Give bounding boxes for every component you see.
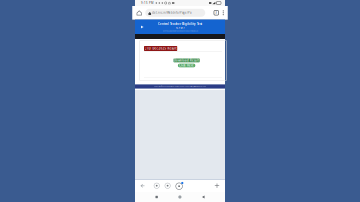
staticText: Download Result xyxy=(174,59,199,62)
button[interactable]: Back xyxy=(140,183,145,188)
button[interactable]: Forward xyxy=(154,183,159,188)
staticText: Click Here xyxy=(179,64,194,67)
button[interactable]: More options xyxy=(221,9,226,17)
staticText: 3 xyxy=(215,11,217,14)
button[interactable]: Home xyxy=(136,10,142,16)
button[interactable]: Profile xyxy=(176,182,183,189)
staticText: Central Teacher Eligibility Test xyxy=(158,22,202,26)
button[interactable]: Back xyxy=(202,195,204,198)
staticText: ctet.nic.in/WebInfo/Page/Pa xyxy=(152,11,191,14)
button[interactable]: Tabs xyxy=(213,9,219,17)
button[interactable]: Recents xyxy=(155,196,158,198)
staticText: (CTET) xyxy=(175,26,184,29)
button[interactable]: Refresh xyxy=(165,183,170,188)
button[interactable]: New tab xyxy=(214,183,220,189)
staticText: CTET Dec 2025 Result xyxy=(145,47,177,50)
button[interactable]: Download Result xyxy=(173,58,200,62)
button[interactable]: Home xyxy=(178,195,181,199)
button[interactable]: CTET Dec 2025 Result xyxy=(144,46,177,51)
button[interactable]: Click Here xyxy=(178,64,195,67)
staticText: CENTRAL BOARD OF SECONDARY EDUCATION, DE… xyxy=(162,30,197,32)
staticText: 9:15 PM xyxy=(141,1,153,5)
staticText: Copyright © 2025 Central Board of Second… xyxy=(154,86,206,87)
button[interactable]: ctet.nic.in/WebInfo/Page/Pa xyxy=(145,9,205,17)
